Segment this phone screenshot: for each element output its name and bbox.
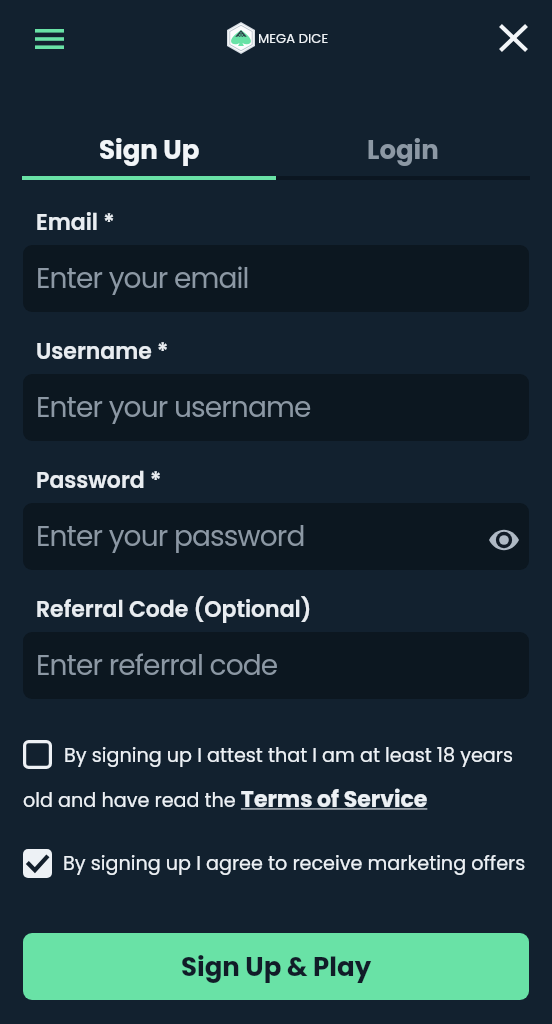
staticText: By signing up I attest that I am at leas…	[23, 742, 529, 815]
button[interactable]: Sign Up & Play	[23, 933, 529, 1000]
staticText: MEGA DICE	[258, 29, 329, 47]
button[interactable]: By signing up I agree to receive marketi…	[23, 849, 529, 878]
button[interactable]: Login	[276, 132, 530, 180]
staticText: Email *	[36, 207, 115, 238]
button[interactable]: By signing up I attest that I am at leas…	[23, 742, 529, 815]
button[interactable]: Enter referral code	[23, 632, 529, 699]
button[interactable]: Menu	[28, 17, 71, 60]
button[interactable]: Close	[491, 16, 535, 60]
staticText: Enter your password	[36, 517, 305, 556]
button[interactable]: Show password	[486, 522, 522, 558]
staticText: Username *	[36, 336, 169, 367]
button[interactable]: Enter your email	[23, 245, 529, 312]
staticText: Referral Code (Optional)	[36, 594, 312, 625]
button[interactable]: Sign Up	[22, 132, 276, 180]
button[interactable]: Enter your password	[23, 503, 529, 570]
staticText: Enter referral code	[36, 646, 278, 685]
staticText: Password *	[36, 465, 162, 496]
staticText: Enter your username	[36, 388, 311, 427]
staticText: Sign Up	[99, 132, 200, 168]
staticText: Sign Up & Play	[181, 949, 372, 985]
staticText: By signing up I agree to receive marketi…	[63, 850, 526, 877]
button[interactable]: Enter your username	[23, 374, 529, 441]
staticText: Enter your email	[36, 259, 249, 298]
staticText: Login	[367, 132, 439, 168]
